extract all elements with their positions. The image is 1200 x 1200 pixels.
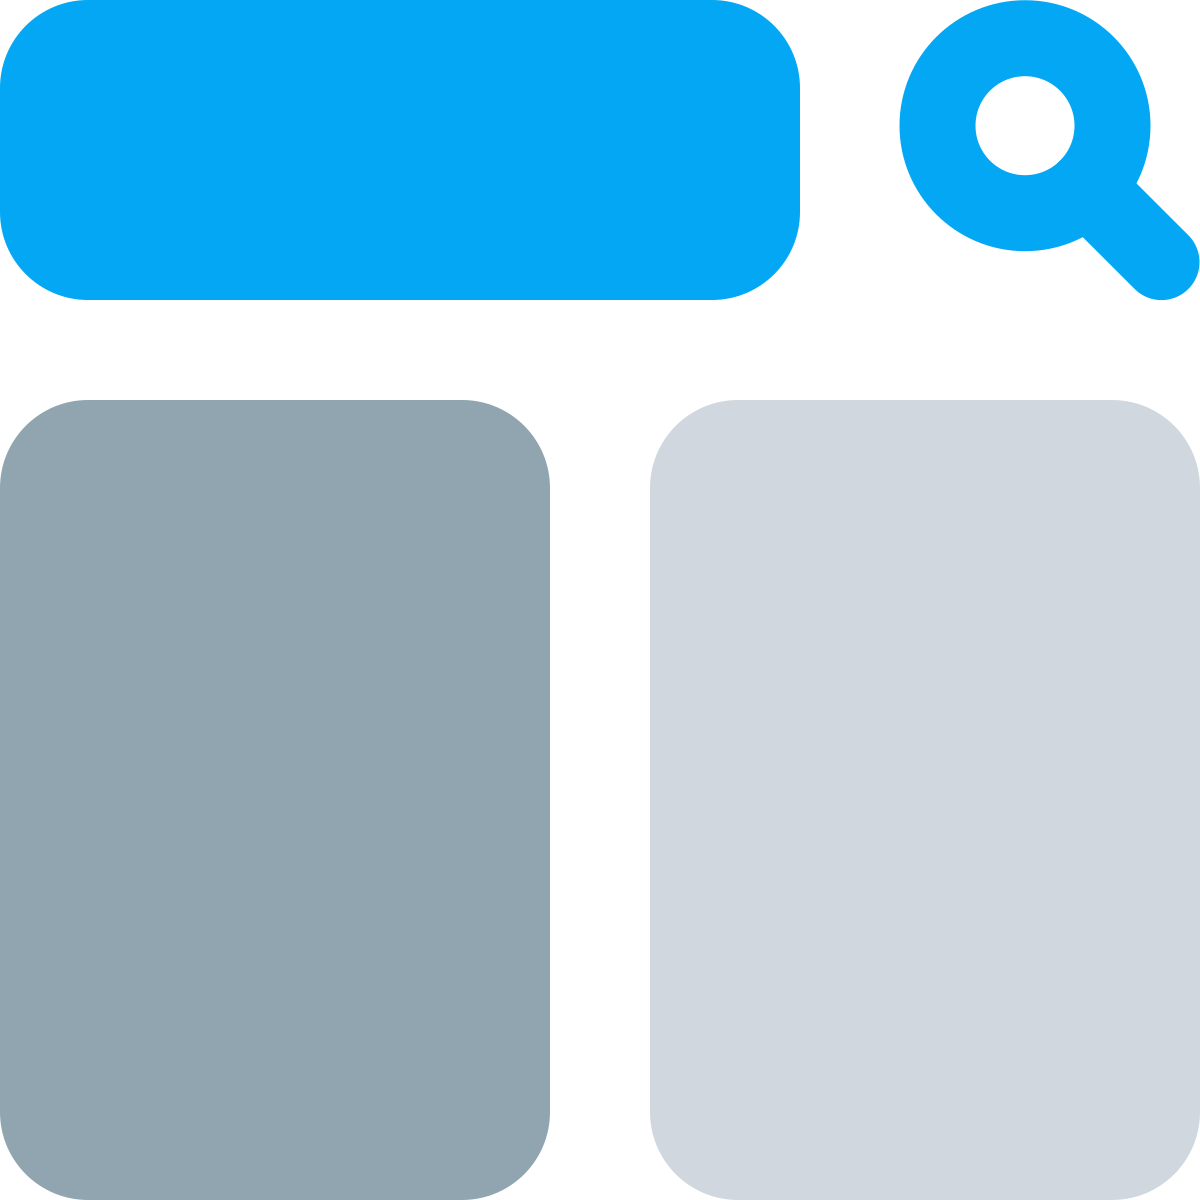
button[interactable]: Browse (650, 400, 1200, 1200)
button[interactable]: Search (850, 0, 1200, 350)
button[interactable]: Search field (0, 0, 800, 300)
button[interactable]: Featured (0, 400, 550, 1200)
